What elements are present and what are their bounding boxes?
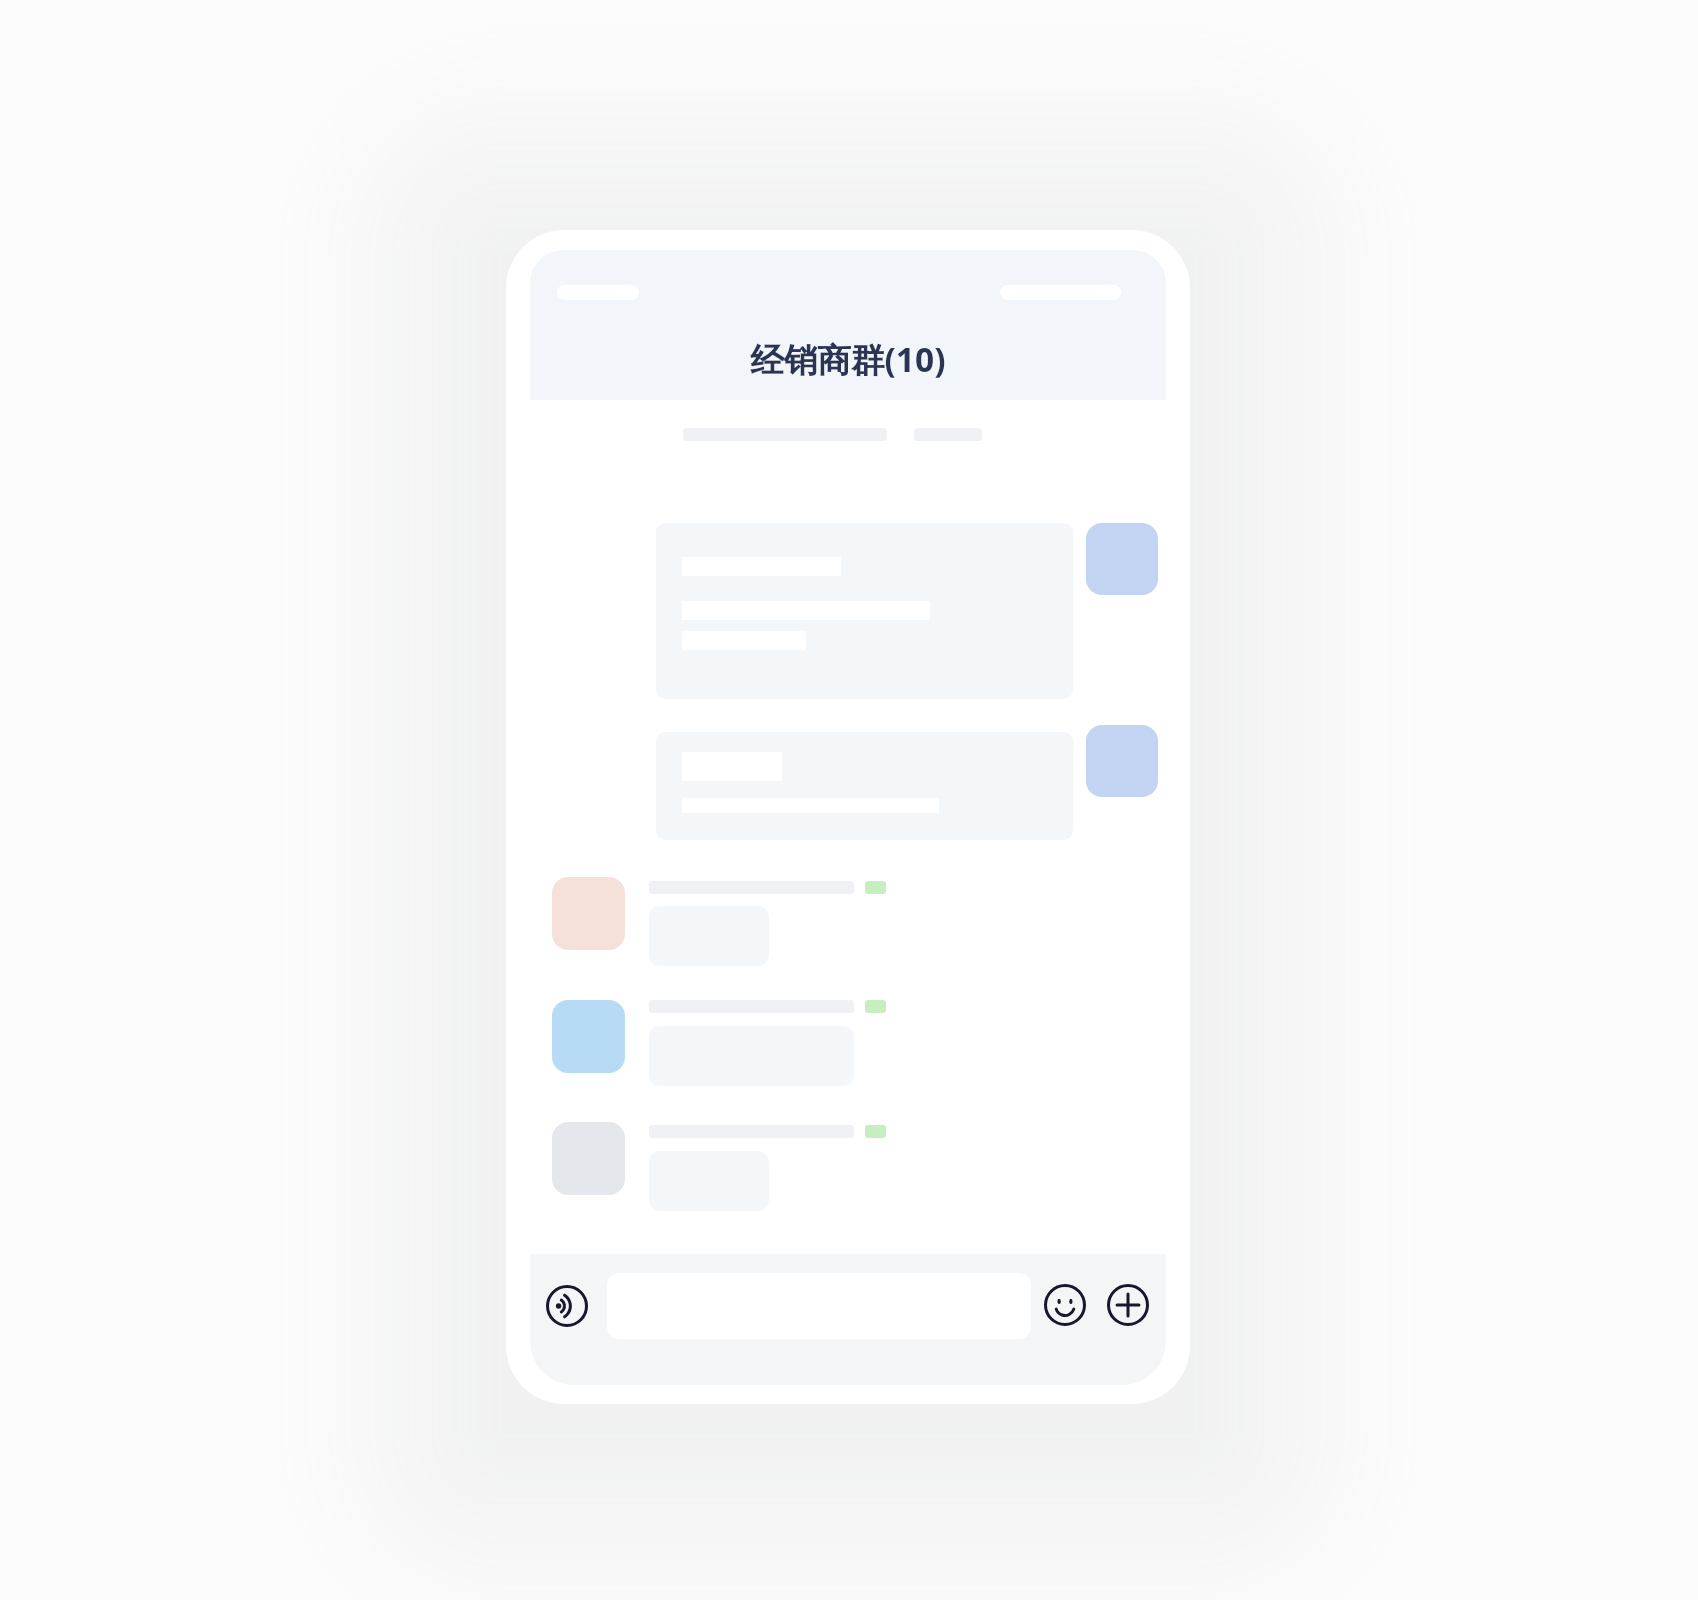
button[interactable] bbox=[656, 732, 1073, 840]
staticText: 经销商群(10) bbox=[530, 336, 1166, 382]
button[interactable] bbox=[552, 1000, 625, 1073]
button[interactable] bbox=[552, 877, 625, 950]
button[interactable] bbox=[1086, 725, 1158, 797]
button[interactable]: Voice message bbox=[546, 1285, 588, 1327]
button[interactable] bbox=[1086, 523, 1158, 595]
button[interactable] bbox=[552, 1122, 625, 1195]
button[interactable]: Emoji bbox=[1044, 1284, 1086, 1326]
button[interactable] bbox=[656, 523, 1073, 699]
button[interactable]: More bbox=[1107, 1284, 1149, 1326]
